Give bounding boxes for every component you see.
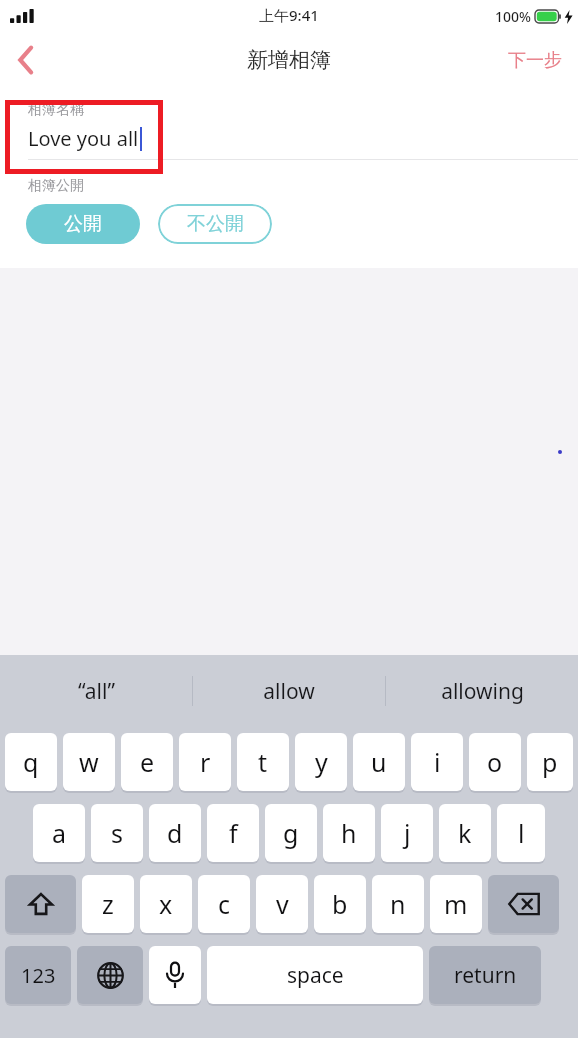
button[interactable]: i: [411, 733, 463, 791]
button[interactable]: b: [314, 875, 366, 933]
staticText: c: [218, 887, 231, 921]
button[interactable]: l: [497, 804, 545, 862]
staticText: return: [454, 961, 517, 990]
staticText: v: [276, 887, 289, 921]
staticText: l: [518, 816, 525, 850]
button[interactable]: 公開: [26, 204, 140, 244]
button[interactable]: r: [179, 733, 231, 791]
staticText: w: [79, 745, 99, 779]
button[interactable]: allowing: [386, 655, 578, 727]
button[interactable]: Back: [0, 34, 52, 86]
button[interactable]: allow: [193, 655, 385, 727]
staticText: 相簿公開: [28, 177, 84, 195]
staticText: e: [140, 745, 155, 779]
button[interactable]: g: [265, 804, 317, 862]
button[interactable]: f: [207, 804, 259, 862]
button[interactable]: “all”: [0, 655, 192, 727]
button[interactable]: o: [469, 733, 521, 791]
button[interactable]: q: [5, 733, 57, 791]
staticText: t: [258, 745, 268, 779]
staticText: allow: [263, 677, 315, 706]
button[interactable]: Shift: [5, 875, 76, 933]
staticText: j: [404, 816, 411, 850]
staticText: a: [52, 816, 67, 850]
staticText: x: [159, 887, 173, 921]
staticText: z: [102, 887, 114, 921]
staticText: s: [111, 816, 123, 850]
button[interactable]: Backspace: [488, 875, 559, 933]
button[interactable]: Switch keyboard: [77, 946, 143, 1004]
staticText: 相簿名稱: [28, 101, 84, 119]
button[interactable]: w: [63, 733, 115, 791]
staticText: m: [444, 887, 468, 921]
button[interactable]: y: [295, 733, 347, 791]
staticText: d: [167, 816, 183, 850]
staticText: b: [332, 887, 348, 921]
button[interactable]: a: [33, 804, 85, 862]
button[interactable]: c: [198, 875, 250, 933]
staticText: o: [487, 745, 503, 779]
staticText: q: [23, 745, 39, 779]
button[interactable]: s: [91, 804, 143, 862]
staticText: p: [542, 745, 558, 779]
staticText: n: [390, 887, 406, 921]
button[interactable]: k: [439, 804, 491, 862]
button[interactable]: n: [372, 875, 424, 933]
button[interactable]: t: [237, 733, 289, 791]
staticText: allowing: [441, 677, 524, 706]
staticText: f: [229, 816, 238, 850]
staticText: 公開: [64, 212, 102, 236]
staticText: “all”: [78, 677, 115, 706]
staticText: 下一步: [508, 49, 562, 72]
button[interactable]: p: [527, 733, 573, 791]
staticText: i: [434, 745, 441, 779]
button[interactable]: 下一步: [492, 39, 578, 82]
button[interactable]: m: [430, 875, 482, 933]
staticText: k: [458, 816, 472, 850]
staticText: 不公開: [187, 212, 244, 236]
staticText: 新增相簿: [247, 47, 331, 73]
staticText: u: [371, 745, 387, 779]
staticText: 上午9:41: [259, 5, 319, 25]
button[interactable]: v: [256, 875, 308, 933]
button[interactable]: h: [323, 804, 375, 862]
button[interactable]: d: [149, 804, 201, 862]
button[interactable]: 不公開: [158, 204, 272, 244]
button[interactable]: e: [121, 733, 173, 791]
staticText: r: [200, 745, 211, 779]
button[interactable]: return: [429, 946, 541, 1004]
button[interactable]: x: [140, 875, 192, 933]
staticText: y: [315, 745, 328, 779]
staticText: h: [341, 816, 357, 850]
button[interactable]: j: [381, 804, 433, 862]
button[interactable]: 123: [5, 946, 71, 1004]
staticText: g: [283, 816, 299, 850]
staticText: space: [287, 961, 344, 990]
staticText: 123: [21, 962, 56, 989]
staticText: 100%: [495, 7, 531, 26]
button[interactable]: space: [207, 946, 423, 1004]
button[interactable]: Dictation: [149, 946, 201, 1004]
staticText: Love you all: [28, 125, 139, 152]
button[interactable]: z: [82, 875, 134, 933]
button[interactable]: u: [353, 733, 405, 791]
